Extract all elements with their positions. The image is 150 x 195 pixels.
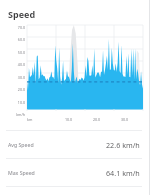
button[interactable]: Max Speed: [0, 159, 150, 186]
staticText: 20.0: [93, 117, 101, 122]
button[interactable]: Avg Speed: [0, 131, 150, 158]
staticText: Max Speed: [8, 169, 35, 176]
staticText: 64.1 km/h: [106, 168, 140, 178]
staticText: 50.0: [17, 50, 25, 55]
staticText: km/h: [16, 112, 25, 117]
staticText: 60.0: [17, 37, 25, 42]
staticText: 30.0: [17, 75, 25, 80]
staticText: 40.0: [17, 62, 25, 67]
staticText: 10.0: [17, 100, 25, 105]
staticText: km: [27, 117, 33, 122]
staticText: 30.0: [121, 117, 129, 122]
staticText: Speed: [8, 8, 36, 20]
staticText: 10.0: [65, 117, 73, 122]
staticText: Avg Speed: [8, 141, 34, 148]
staticText: 20.0: [17, 87, 25, 92]
staticText: 22.6 km/h: [106, 140, 140, 150]
staticText: 70.0: [17, 25, 25, 30]
